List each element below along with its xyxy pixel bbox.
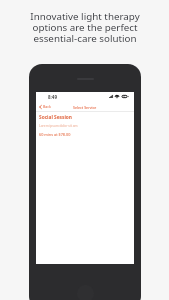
staticText: Lorem ipsum dolor sit am	[39, 124, 78, 128]
button[interactable]: Select Service	[36, 103, 134, 112]
staticText: 60 mins at $78.00	[39, 132, 71, 137]
staticText: 8:49	[48, 94, 57, 100]
staticText: Back	[43, 104, 51, 109]
staticText: Innovative light therapy options are the…	[30, 10, 140, 45]
button[interactable]: Back	[39, 104, 51, 109]
staticText: Social Session	[39, 114, 72, 121]
staticText: Select Service	[73, 105, 97, 110]
